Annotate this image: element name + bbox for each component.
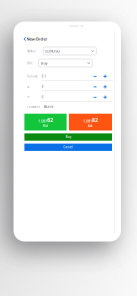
staticText: Side — [27, 61, 33, 65]
staticText: TP — [27, 95, 30, 99]
button[interactable]: New Order — [26, 36, 66, 41]
staticText: New Order — [26, 36, 47, 42]
staticText: 82 — [92, 116, 98, 124]
staticText: Buy — [66, 135, 71, 139]
staticText: 0.1 — [42, 75, 47, 78]
button[interactable]: Increase SL — [103, 85, 107, 88]
staticText: Buy — [41, 60, 48, 66]
button[interactable]: Cancel — [24, 144, 112, 151]
staticText: Ask — [88, 124, 93, 128]
staticText: 62 — [47, 116, 53, 124]
staticText: 1.081 — [83, 118, 92, 124]
staticText: Comment — [27, 105, 40, 109]
button[interactable]: 1.081 — [69, 114, 112, 130]
staticText: SL — [27, 85, 29, 89]
button[interactable]: Increase TP — [103, 95, 107, 99]
button[interactable]: Increase Volume — [103, 74, 107, 78]
staticText: 0 — [42, 85, 44, 89]
button[interactable]: Back — [24, 37, 26, 41]
staticText: 0 — [42, 95, 44, 99]
button[interactable]: Buy — [24, 133, 112, 141]
button[interactable]: Buy — [39, 59, 92, 67]
button[interactable]: EURUSD — [43, 47, 96, 55]
staticText: 1.081 — [38, 118, 47, 124]
staticText: Mobile — [44, 105, 54, 109]
button[interactable]: 1.081 — [24, 114, 67, 130]
staticText: Volume — [27, 75, 38, 78]
button[interactable]: Decrease SL — [93, 85, 97, 88]
staticText: Bid — [43, 124, 48, 128]
staticText: EURUSD — [45, 48, 60, 54]
button[interactable]: Decrease Volume — [93, 75, 97, 78]
staticText: Cancel — [63, 145, 73, 149]
staticText: Symbol — [27, 49, 36, 53]
button[interactable]: Decrease TP — [93, 96, 97, 99]
